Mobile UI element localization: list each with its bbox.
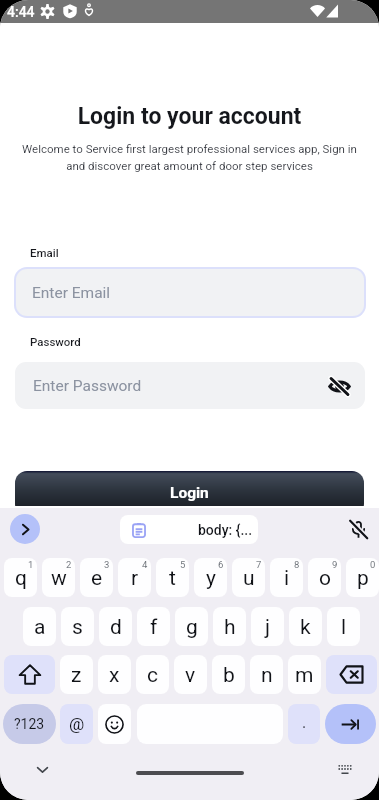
button[interactable]: i [270, 558, 303, 597]
staticText: t [169, 566, 176, 591]
staticText: 5 [180, 559, 186, 570]
staticText: @ [69, 714, 85, 734]
button[interactable]: h [213, 607, 246, 646]
staticText: q [15, 566, 27, 591]
button[interactable]: . [288, 704, 320, 744]
staticText: b [223, 663, 235, 688]
staticText: 4 [142, 559, 148, 570]
button[interactable]: Emoji [98, 704, 131, 744]
staticText: i [284, 566, 290, 591]
button[interactable]: v [174, 655, 207, 694]
staticText: 6 [218, 559, 224, 570]
staticText: c [147, 663, 158, 688]
button[interactable]: ?123 [3, 704, 56, 744]
button[interactable]: o [308, 558, 341, 597]
staticText: y [206, 566, 216, 591]
button[interactable]: u [232, 558, 265, 597]
staticText: l [341, 615, 347, 640]
button[interactable]: p [346, 558, 379, 597]
staticText: Password [30, 335, 81, 348]
staticText: v [185, 663, 196, 688]
button[interactable]: c [136, 655, 169, 694]
button[interactable]: t [156, 558, 189, 597]
staticText: o [319, 566, 331, 591]
staticText: m [295, 663, 314, 688]
staticText: k [300, 615, 311, 640]
staticText: 3 [104, 559, 110, 570]
button[interactable]: Voice input off [348, 519, 368, 539]
staticText: s [72, 615, 83, 640]
button[interactable]: Hide keyboard [30, 757, 54, 781]
button[interactable]: g [175, 607, 208, 646]
staticText: w [51, 566, 67, 591]
staticText: x [109, 663, 120, 688]
button[interactable]: More suggestions [10, 514, 40, 544]
staticText: 8 [294, 559, 300, 570]
staticText: e [91, 566, 103, 591]
staticText: Email [30, 246, 59, 259]
staticText: a [34, 615, 46, 640]
button[interactable]: d [99, 607, 132, 646]
staticText: body: {... [198, 522, 253, 538]
button[interactable]: Login [15, 471, 364, 516]
staticText: f [150, 615, 158, 640]
staticText: 0 [370, 559, 376, 570]
button[interactable]: body: {... [120, 515, 258, 544]
staticText: 2 [66, 559, 72, 570]
button[interactable]: Shift [4, 655, 55, 694]
button[interactable]: Show password [325, 372, 353, 400]
staticText: Login to your account [0, 103, 379, 130]
button[interactable]: f [137, 607, 170, 646]
button[interactable]: l [327, 607, 360, 646]
button[interactable]: @ [60, 704, 93, 744]
staticText: h [224, 615, 236, 640]
staticText: Enter Password [33, 377, 142, 395]
staticText: d [110, 615, 122, 640]
staticText: z [71, 663, 82, 688]
button[interactable]: x [98, 655, 131, 694]
button[interactable]: Enter Email [16, 269, 364, 316]
button[interactable]: Backspace [326, 655, 377, 694]
staticText: u [243, 566, 255, 591]
staticText: j [265, 615, 271, 640]
button[interactable]: Enter [325, 704, 376, 744]
button[interactable]: y [194, 558, 227, 597]
staticText: 9 [332, 559, 338, 570]
button[interactable]: b [212, 655, 245, 694]
button[interactable]: r [118, 558, 151, 597]
staticText: Welcome to Service first largest profess… [0, 142, 379, 173]
staticText: 4:44 [7, 4, 35, 20]
button[interactable]: m [288, 655, 321, 694]
staticText: ?123 [14, 716, 45, 732]
staticText: n [261, 663, 273, 688]
button[interactable]: n [250, 655, 283, 694]
button[interactable]: q [4, 558, 37, 597]
button[interactable]: j [251, 607, 284, 646]
button[interactable]: w [42, 558, 75, 597]
button[interactable]: k [289, 607, 322, 646]
staticText: g [186, 615, 198, 640]
button[interactable]: s [61, 607, 94, 646]
staticText: 1 [28, 559, 34, 570]
staticText: p [357, 566, 369, 591]
button[interactable]: Switch keyboard [333, 757, 357, 781]
button[interactable]: z [60, 655, 93, 694]
staticText: r [131, 566, 139, 591]
staticText: Login [170, 484, 209, 502]
staticText: . [302, 713, 307, 732]
staticText: 7 [256, 559, 262, 570]
button[interactable]: a [23, 607, 56, 646]
button[interactable]: Enter Password [15, 362, 365, 409]
staticText: Enter Email [32, 284, 111, 302]
button[interactable]: e [80, 558, 113, 597]
